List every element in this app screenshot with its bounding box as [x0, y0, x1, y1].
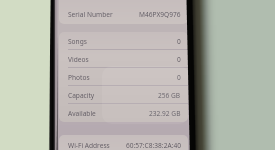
staticText: Capacity: [68, 91, 95, 100]
staticText: Serial Number: [68, 10, 113, 19]
staticText: Available: [68, 109, 96, 118]
button[interactable]: Available: [59, 104, 188, 122]
button[interactable]: Videos: [59, 50, 188, 68]
button[interactable]: Photos: [59, 68, 188, 86]
button[interactable]: Capacity: [59, 86, 188, 104]
staticText: Videos: [68, 55, 89, 64]
staticText: Photos: [68, 73, 90, 82]
staticText: M46PX9Q976: [139, 10, 181, 19]
staticText: 256 GB: [158, 91, 181, 100]
staticText: Wi-Fi Address: [68, 141, 110, 150]
staticText: 60:57:C8:38:2A:40: [126, 141, 181, 150]
staticText: 0: [177, 55, 181, 64]
staticText: 0: [177, 73, 181, 82]
staticText: 0: [177, 37, 181, 46]
staticText: 232.92 GB: [149, 109, 181, 118]
staticText: Songs: [68, 37, 87, 46]
button[interactable]: Songs: [59, 32, 188, 50]
